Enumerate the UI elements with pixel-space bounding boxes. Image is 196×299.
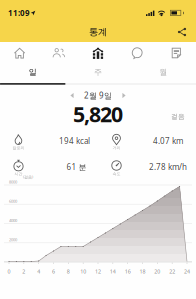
staticText: 22 xyxy=(169,268,175,275)
button[interactable]: 일 xyxy=(0,62,65,82)
staticText: 11:09 xyxy=(8,8,30,18)
staticText: 일 xyxy=(29,67,37,77)
staticText: 4 xyxy=(37,268,40,275)
staticText: 시간 xyxy=(14,171,22,176)
staticText: 통계 xyxy=(89,26,107,38)
button[interactable]: 이전 날짜 xyxy=(67,90,77,100)
button[interactable]: 주 xyxy=(65,62,130,82)
staticText: 0 xyxy=(7,268,10,275)
staticText: 12 xyxy=(95,268,101,275)
button[interactable]: 친구 xyxy=(51,45,67,61)
staticText: 2 xyxy=(22,268,25,275)
staticText: 8 xyxy=(67,268,70,275)
button[interactable]: 뉴스 xyxy=(168,45,184,61)
staticText: 10 xyxy=(80,268,86,275)
staticText: 2.78 km/h xyxy=(149,162,187,172)
staticText: (걸음) xyxy=(23,174,33,180)
staticText: 14 xyxy=(110,268,116,275)
button[interactable]: 월 xyxy=(131,62,196,82)
staticText: 6 xyxy=(52,268,55,275)
staticText: 속도 xyxy=(112,171,120,176)
staticText: 16 xyxy=(125,268,131,275)
staticText: 칼로리 xyxy=(12,145,24,150)
button[interactable]: 홈 xyxy=(12,45,28,61)
staticText: 2월 9일 xyxy=(84,90,112,101)
staticText: 걸음 xyxy=(171,112,185,121)
staticText: 거리 xyxy=(112,145,120,150)
staticText: 61 분 xyxy=(66,162,86,172)
staticText: 24 xyxy=(184,268,190,275)
staticText: 194 kcal xyxy=(59,136,90,146)
staticText: 8000 xyxy=(9,179,17,185)
staticText: 20 xyxy=(154,268,160,275)
staticText: 5,820 xyxy=(73,100,123,128)
button[interactable]: 채팅 xyxy=(129,45,145,61)
staticText: 6000 xyxy=(9,199,17,204)
staticText: 2000 xyxy=(9,237,17,242)
button[interactable]: 다음 날짜 xyxy=(119,90,129,100)
staticText: 4.07 km xyxy=(153,136,183,146)
button[interactable]: 공유 xyxy=(175,25,189,39)
staticText: 주 xyxy=(94,67,102,77)
staticText: 4000 xyxy=(9,218,17,223)
staticText: 18 xyxy=(139,268,145,275)
staticText: 월 xyxy=(159,67,167,77)
button[interactable]: 통계 xyxy=(90,45,106,61)
